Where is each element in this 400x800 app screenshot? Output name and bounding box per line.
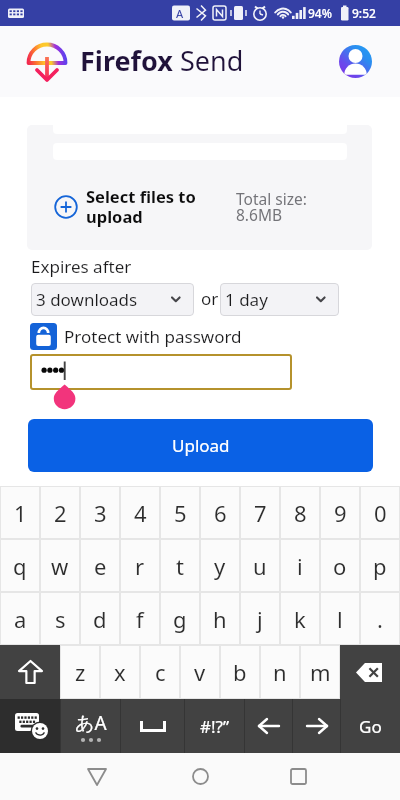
button[interactable]: Back [72, 753, 122, 800]
button[interactable]: 2 [41, 487, 79, 538]
button[interactable]: t [161, 540, 199, 591]
button[interactable]: 1 day [220, 283, 339, 316]
button[interactable]: n [261, 646, 299, 698]
button[interactable]: Space [121, 699, 184, 753]
staticText: n [273, 657, 287, 687]
button[interactable]: l [321, 593, 359, 644]
button[interactable]: y [201, 540, 239, 591]
staticText: 94% [308, 5, 332, 21]
staticText: w [51, 551, 69, 581]
button[interactable]: Protect with password [30, 323, 242, 350]
staticText: Expires after [31, 255, 132, 278]
staticText: 8 [294, 498, 307, 528]
button[interactable]: . [361, 593, 399, 644]
staticText: b [233, 657, 247, 687]
staticText: c [155, 657, 166, 687]
button[interactable]: h [201, 593, 239, 644]
button[interactable]: m [301, 646, 339, 698]
button[interactable]: Account [339, 45, 372, 78]
staticText: e [94, 551, 107, 581]
staticText: l [337, 604, 343, 634]
button[interactable]: 3 [81, 487, 119, 538]
staticText: 3 [94, 498, 107, 528]
staticText: k [294, 604, 306, 634]
button[interactable]: j [241, 593, 279, 644]
staticText: 5 [174, 498, 187, 528]
staticText: 7 [254, 498, 267, 528]
button[interactable]: b [221, 646, 259, 698]
button[interactable]: 9 [321, 487, 359, 538]
staticText: or [201, 287, 219, 310]
button[interactable]: Move right [293, 699, 340, 753]
staticText: x [114, 657, 126, 687]
button[interactable]: Emoji keyboard [0, 699, 60, 753]
button[interactable]: e [81, 540, 119, 591]
button[interactable]: Home [175, 753, 225, 800]
button[interactable]: g [161, 593, 199, 644]
button[interactable]: x [101, 646, 139, 698]
staticText: 9:52 [352, 5, 376, 21]
staticText: 3 downloads [36, 288, 138, 311]
button[interactable]: u [241, 540, 279, 591]
button[interactable]: 4 [121, 487, 159, 538]
button[interactable]: q [1, 540, 39, 591]
staticText: A [176, 6, 184, 21]
button[interactable]: 7 [241, 487, 279, 538]
staticText: 9 [334, 498, 347, 528]
button[interactable]: Recent apps [273, 753, 323, 800]
button[interactable] [30, 354, 292, 390]
button[interactable]: 8 [281, 487, 319, 538]
button[interactable]: Shift [0, 645, 60, 699]
button[interactable]: i [281, 540, 319, 591]
staticText: g [173, 604, 187, 634]
button[interactable]: k [281, 593, 319, 644]
button[interactable]: Backspace [340, 645, 400, 699]
button[interactable]: 1 [1, 487, 39, 538]
staticText: 6 [214, 498, 227, 528]
staticText: あA [75, 710, 107, 736]
button[interactable]: z [61, 646, 99, 698]
button[interactable]: Upload [28, 419, 373, 472]
button[interactable]: c [141, 646, 179, 698]
button[interactable]: p [361, 540, 399, 591]
staticText: h [213, 604, 227, 634]
button[interactable]: d [81, 593, 119, 644]
button[interactable]: f [121, 593, 159, 644]
button[interactable]: #!?” [185, 699, 244, 753]
staticText: 4 [134, 498, 147, 528]
staticText: . [377, 604, 383, 634]
staticText: Upload [172, 434, 230, 457]
button[interactable]: r [121, 540, 159, 591]
button[interactable]: s [41, 593, 79, 644]
staticText: f [136, 604, 144, 634]
staticText: z [75, 657, 86, 687]
button[interactable]: あA [61, 699, 120, 753]
staticText: s [55, 604, 66, 634]
button[interactable]: Go [341, 699, 400, 753]
button[interactable]: o [321, 540, 359, 591]
button[interactable]: 0 [361, 487, 399, 538]
staticText: t [176, 551, 184, 581]
staticText: u [253, 551, 267, 581]
button[interactable]: Move left [245, 699, 292, 753]
button[interactable]: Select files to upload [27, 125, 372, 250]
staticText: Protect with password [64, 325, 242, 348]
staticText: j [257, 604, 263, 634]
button[interactable]: a [1, 593, 39, 644]
button[interactable]: w [41, 540, 79, 591]
staticText: Send [180, 42, 244, 79]
staticText: y [214, 551, 226, 581]
staticText: m [310, 657, 331, 687]
staticText: a [14, 604, 27, 634]
button[interactable]: v [181, 646, 219, 698]
button[interactable]: 5 [161, 487, 199, 538]
staticText: 1 day [225, 288, 268, 311]
staticText: d [93, 604, 107, 634]
staticText: p [373, 551, 387, 581]
button[interactable]: 3 downloads [31, 283, 194, 316]
staticText: Firefox [80, 42, 173, 79]
staticText: q [13, 551, 27, 581]
staticText: Select files to upload [86, 185, 196, 228]
button[interactable]: 6 [201, 487, 239, 538]
staticText: Go [359, 715, 382, 738]
